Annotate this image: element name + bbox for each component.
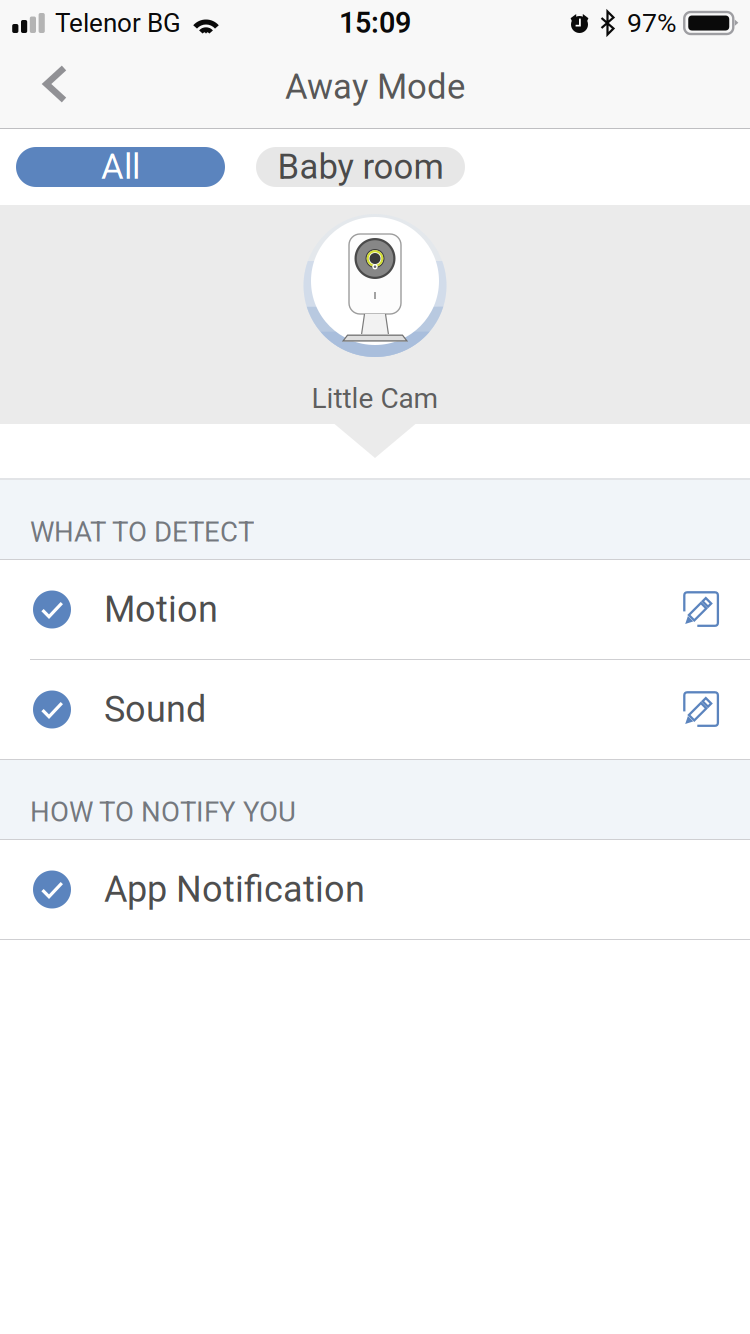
button[interactable]: Back xyxy=(0,46,104,128)
button[interactable]: Sound xyxy=(0,660,750,759)
button[interactable]: All xyxy=(16,147,225,187)
staticText: Little Cam xyxy=(311,382,438,415)
staticText: 97% xyxy=(627,7,677,39)
staticText: All xyxy=(101,147,140,187)
staticText: 15:09 xyxy=(339,6,411,40)
button[interactable]: Baby room xyxy=(256,147,465,187)
staticText: App Notification xyxy=(104,868,365,911)
staticText: WHAT TO DETECT xyxy=(30,516,254,548)
staticText: HOW TO NOTIFY YOU xyxy=(30,796,296,828)
staticText: Away Mode xyxy=(285,67,465,107)
staticText: Motion xyxy=(104,588,218,631)
button[interactable]: Motion xyxy=(0,560,750,659)
button[interactable]: App Notification xyxy=(0,840,750,939)
staticText: Telenor BG xyxy=(55,8,181,38)
staticText: Sound xyxy=(104,688,206,731)
staticText: Baby room xyxy=(277,147,443,187)
